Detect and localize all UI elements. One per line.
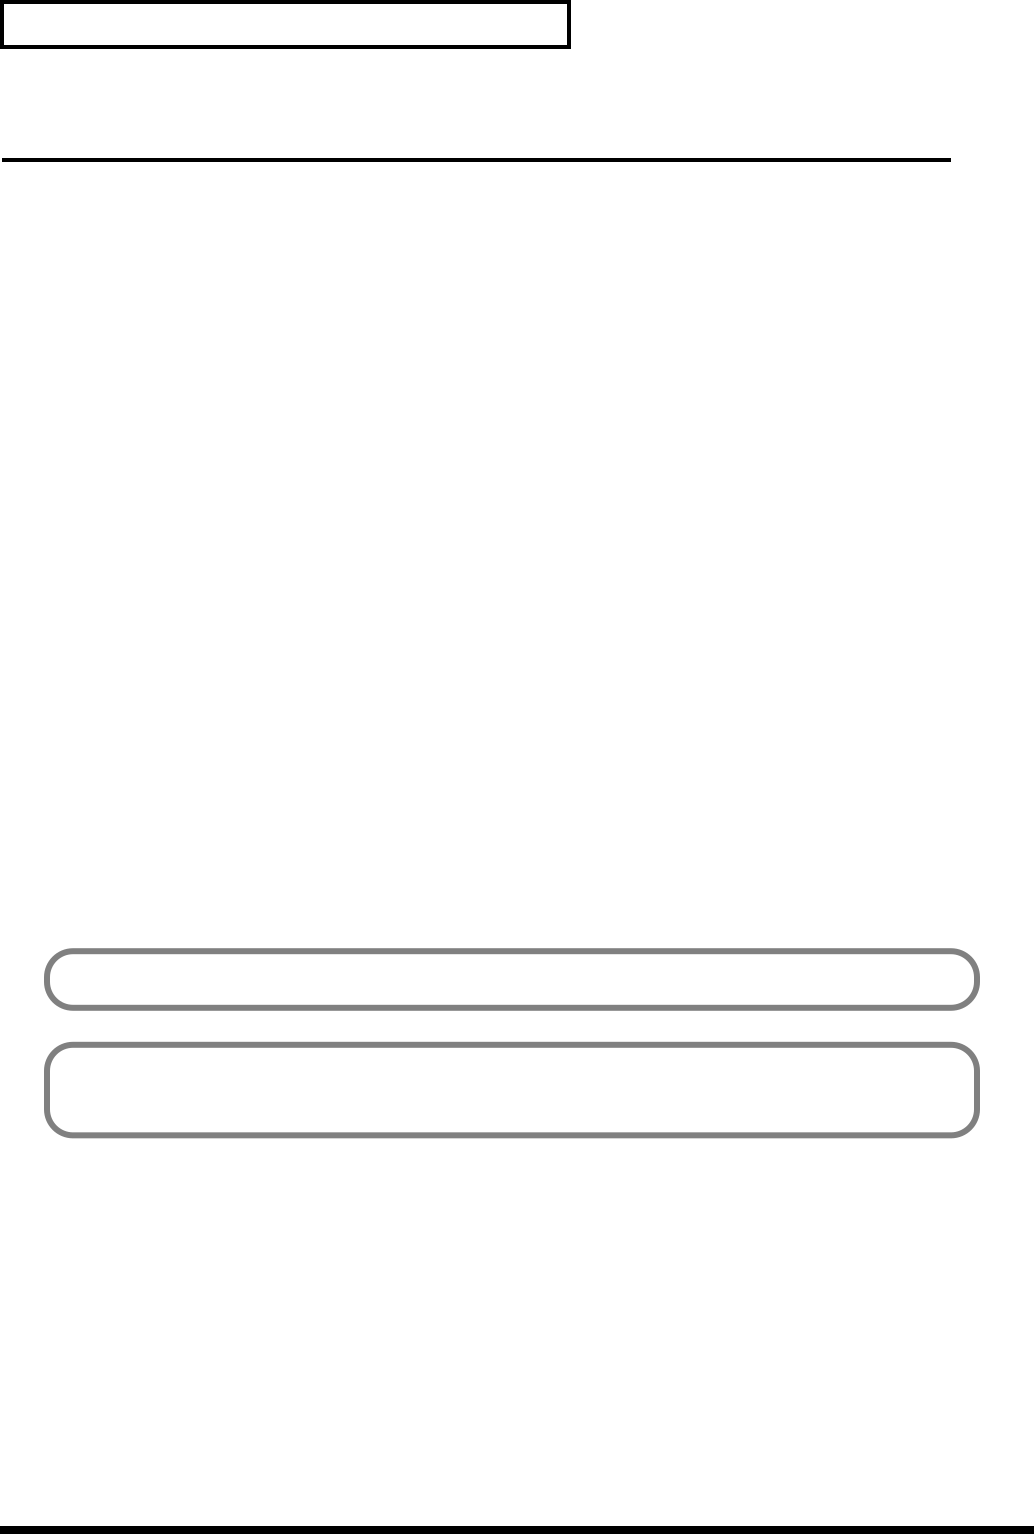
button[interactable]: Single line text field — [47, 951, 977, 1008]
button[interactable]: Title — [2, 2, 569, 47]
button[interactable]: Multi line text field — [47, 1045, 977, 1135]
